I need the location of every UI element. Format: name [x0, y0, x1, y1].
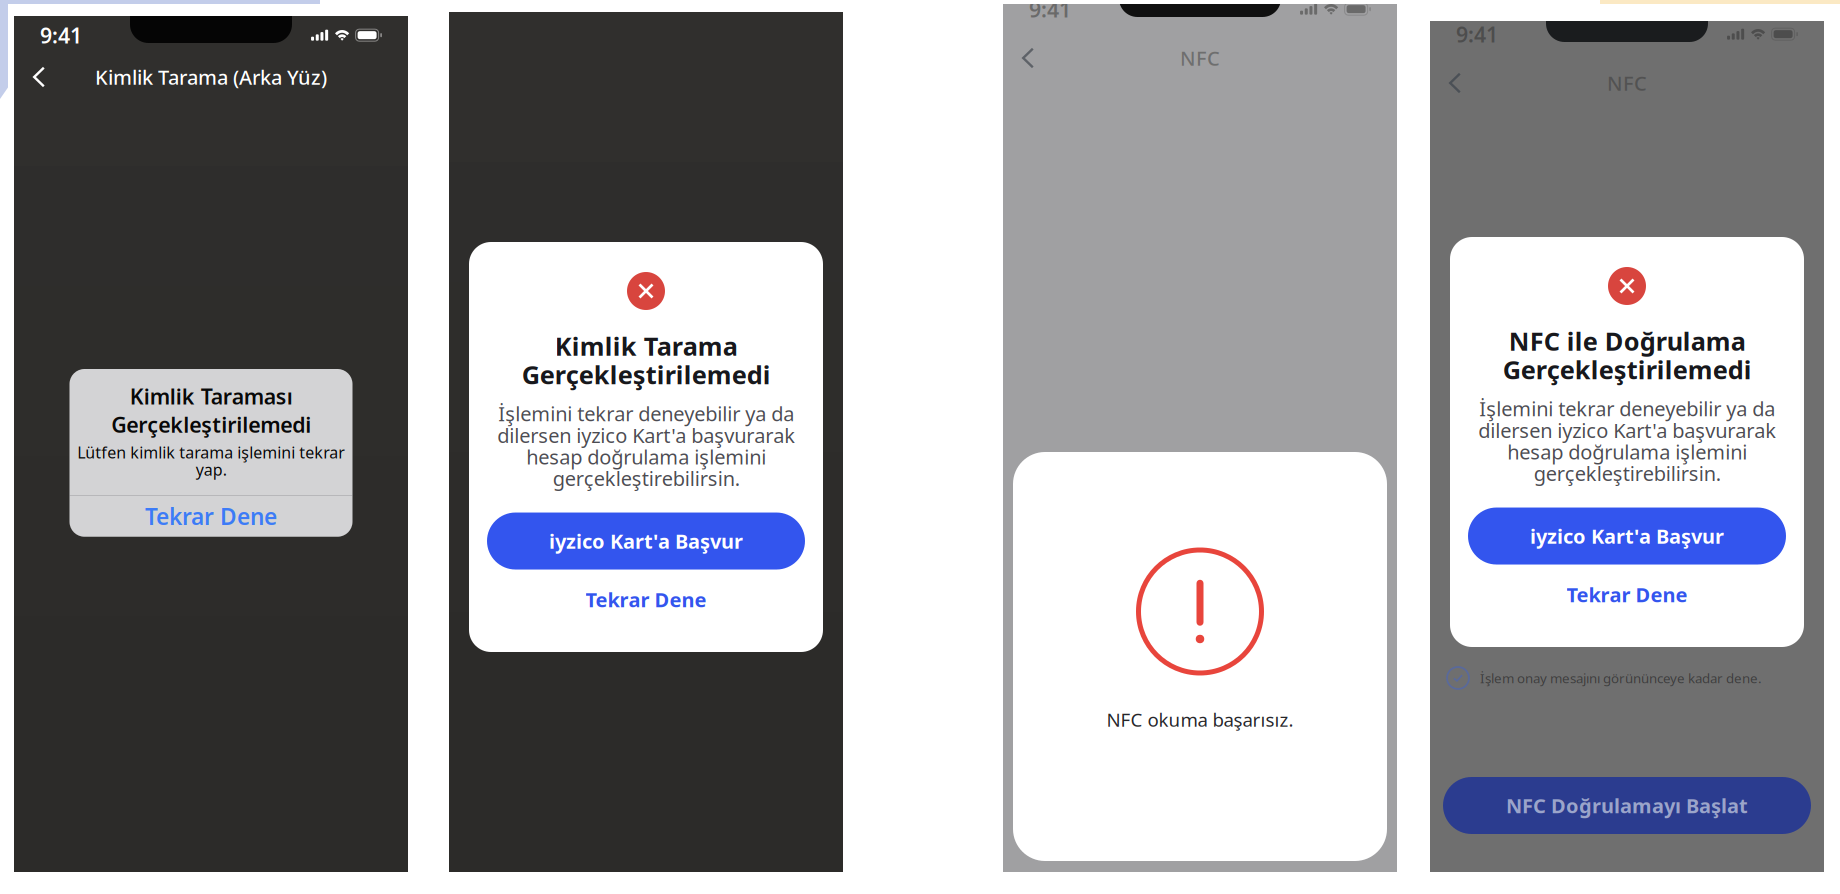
button[interactable]: iyzico Kart'a Başvur — [487, 512, 805, 569]
staticText: 9:41 — [40, 21, 82, 49]
button[interactable]: Tekrar Dene — [1450, 575, 1804, 613]
staticText: Kimlik Taraması Gerçekleştirilemedi — [111, 382, 311, 439]
staticText: iyzico Kart'a Başvur — [1530, 523, 1724, 549]
staticText: Tekrar Dene — [585, 586, 706, 613]
staticText: NFC — [1607, 70, 1647, 96]
staticText: NFC okuma başarısız. — [1106, 707, 1293, 732]
staticText: İşlemini tekrar deneyebilir ya da dilers… — [497, 400, 795, 491]
button[interactable]: iyzico Kart'a Başvur — [1468, 507, 1786, 564]
staticText: İşlemini tekrar deneyebilir ya da dilers… — [1478, 395, 1776, 486]
staticText: İşlem onay mesajını görününceye kadar de… — [1480, 669, 1762, 687]
staticText: Kimlik Tarama (Arka Yüz) — [95, 64, 327, 90]
staticText: Lütfen kimlik tarama işlemini tekrar yap… — [77, 442, 345, 480]
button[interactable]: Back — [1430, 61, 1475, 104]
staticText: NFC — [1180, 45, 1220, 71]
button[interactable]: Back — [1003, 36, 1048, 79]
staticText: NFC Doğrulamayı Başlat — [1506, 792, 1748, 819]
staticText: 9:41 — [1029, 0, 1071, 23]
button[interactable]: Tekrar Dene — [469, 580, 823, 618]
staticText: iyzico Kart'a Başvur — [549, 528, 743, 554]
button[interactable]: Back — [14, 55, 59, 98]
staticText: Tekrar Dene — [1566, 581, 1687, 608]
staticText: Tekrar Dene — [145, 501, 277, 531]
staticText: NFC ile Doğrulama Gerçekleştirilemedi — [1502, 324, 1751, 386]
button[interactable]: Tekrar Dene — [69, 496, 352, 537]
staticText: 9:41 — [1456, 20, 1498, 48]
staticText: Kimlik Tarama Gerçekleştirilemedi — [521, 329, 770, 391]
